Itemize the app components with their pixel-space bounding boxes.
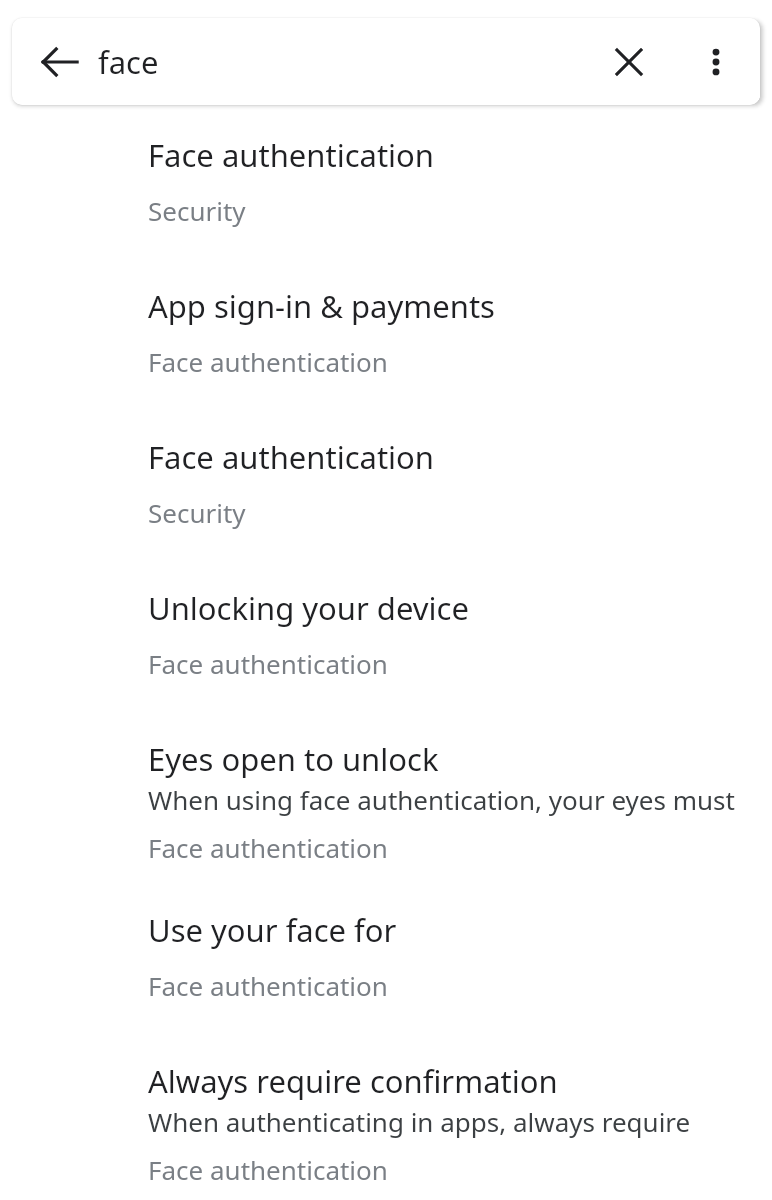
button[interactable]: Face authentication [0,134,772,285]
staticText: Face authentication [148,968,388,1003]
staticText: Face authentication [148,436,435,478]
staticText: Security [148,193,246,228]
staticText: Face authentication [148,830,388,865]
staticText: Face authentication [148,646,388,681]
staticText: Face authentication [148,1152,388,1187]
staticText: face [98,41,159,83]
button[interactable]: Eyes open to unlock [0,738,772,909]
staticText: App sign-in & payments [148,285,495,327]
staticText: Eyes open to unlock [148,738,439,780]
staticText: Always require confirmation [148,1060,558,1102]
staticText: Face authentication [148,134,435,176]
staticText: Use your face for [148,909,397,951]
button[interactable]: More options [688,34,744,90]
button[interactable]: Back [32,34,88,90]
button[interactable]: Always require confirmation [0,1060,772,1200]
staticText: Unlocking your device [148,587,469,629]
button[interactable]: Unlocking your device [0,587,772,738]
staticText: Security [148,495,246,530]
staticText: When using face authentication, your eye… [148,782,764,817]
button[interactable]: App sign-in & payments [0,285,772,436]
staticText: When authenticating in apps, always requ… [148,1104,764,1139]
staticText: Face authentication [148,344,388,379]
button[interactable]: Clear search [601,34,657,90]
button[interactable]: Use your face for [0,909,772,1060]
button[interactable]: Face authentication [0,436,772,587]
